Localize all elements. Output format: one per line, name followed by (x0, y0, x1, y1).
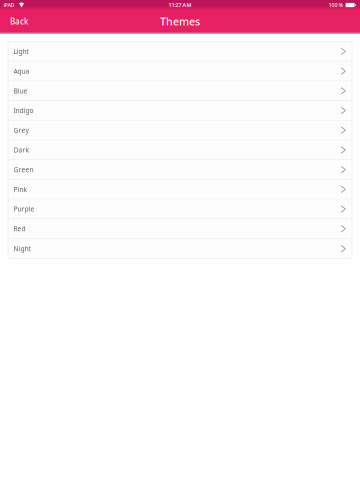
staticText: 11:27 AM (168, 1, 191, 9)
staticText: Aqua (13, 67, 29, 76)
staticText: Dark (13, 145, 29, 154)
button[interactable]: Aqua (8, 62, 352, 81)
staticText: Back (10, 16, 28, 27)
button[interactable]: Green (8, 160, 352, 180)
button[interactable]: Purple (8, 199, 352, 219)
button[interactable]: Pink (8, 180, 352, 199)
staticText: Green (13, 165, 33, 174)
staticText: Red (13, 224, 25, 233)
button[interactable]: Indigo (8, 101, 352, 121)
button[interactable]: Grey (8, 121, 352, 140)
staticText: Night (13, 244, 30, 253)
staticText: iPAD (3, 1, 14, 9)
button[interactable]: Night (8, 239, 352, 258)
button[interactable]: Blue (8, 81, 352, 101)
button[interactable]: Dark (8, 140, 352, 160)
button[interactable]: Red (8, 219, 352, 239)
staticText: Light (13, 47, 28, 56)
button[interactable]: Light (8, 42, 352, 62)
staticText: Indigo (13, 106, 33, 115)
staticText: Pink (13, 185, 27, 194)
staticText: Grey (13, 126, 28, 135)
staticText: Purple (13, 205, 34, 213)
staticText: 100 % (328, 1, 343, 9)
staticText: Themes (160, 14, 200, 28)
staticText: Blue (13, 86, 27, 95)
button[interactable]: Back (0, 10, 36, 33)
